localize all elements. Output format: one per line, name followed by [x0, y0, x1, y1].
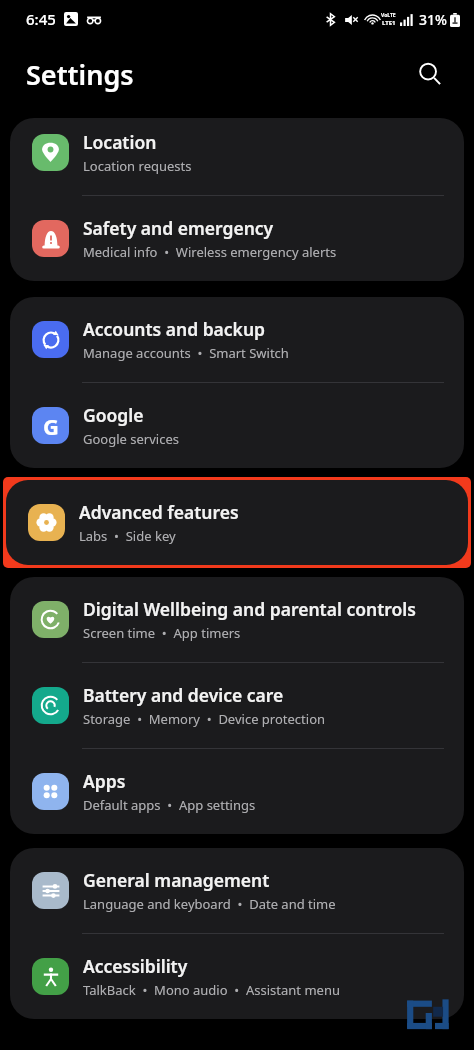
staticText: Labs • Side key: [79, 527, 176, 545]
staticText: Settings: [26, 56, 134, 93]
staticText: 31%: [419, 10, 447, 29]
staticText: G: [43, 411, 59, 441]
staticText: Apps: [83, 769, 126, 793]
staticText: Google: [83, 403, 144, 427]
staticText: Location: [83, 130, 157, 154]
staticText: Manage accounts • Smart Switch: [83, 344, 289, 362]
staticText: Screen time • App timers: [83, 624, 241, 642]
staticText: Battery and device care: [83, 683, 284, 707]
staticText: Advanced features: [79, 500, 239, 524]
button[interactable]: Search: [408, 52, 452, 96]
button[interactable]: Accessibility: [10, 934, 464, 1019]
button[interactable]: Digital Wellbeing and parental controls: [10, 577, 464, 662]
button[interactable]: Location: [10, 118, 464, 195]
staticText: 6:45: [26, 9, 56, 29]
staticText: TalkBack • Mono audio • Assistant menu: [83, 981, 340, 999]
staticText: Storage • Memory • Device protection: [83, 710, 326, 728]
button[interactable]: Accounts and backup: [10, 297, 464, 382]
button[interactable]: Advanced features: [6, 480, 468, 565]
staticText: LTE1: [382, 19, 396, 27]
staticText: Safety and emergency: [83, 216, 274, 240]
staticText: Google services: [83, 430, 179, 448]
button[interactable]: Safety and emergency: [10, 196, 464, 281]
staticText: Default apps • App settings: [83, 796, 256, 814]
staticText: Accessibility: [83, 954, 188, 978]
staticText: Digital Wellbeing and parental controls: [83, 597, 416, 621]
button[interactable]: Apps: [10, 749, 464, 834]
staticText: Language and keyboard • Date and time: [83, 895, 336, 913]
staticText: General management: [83, 868, 270, 892]
button[interactable]: G: [10, 383, 464, 468]
staticText: Accounts and backup: [83, 317, 266, 341]
staticText: Location requests: [83, 157, 192, 175]
button[interactable]: General management: [10, 848, 464, 933]
staticText: Medical info • Wireless emergency alerts: [83, 243, 337, 261]
button[interactable]: Battery and device care: [10, 663, 464, 748]
staticText: VoLTE: [381, 12, 396, 19]
